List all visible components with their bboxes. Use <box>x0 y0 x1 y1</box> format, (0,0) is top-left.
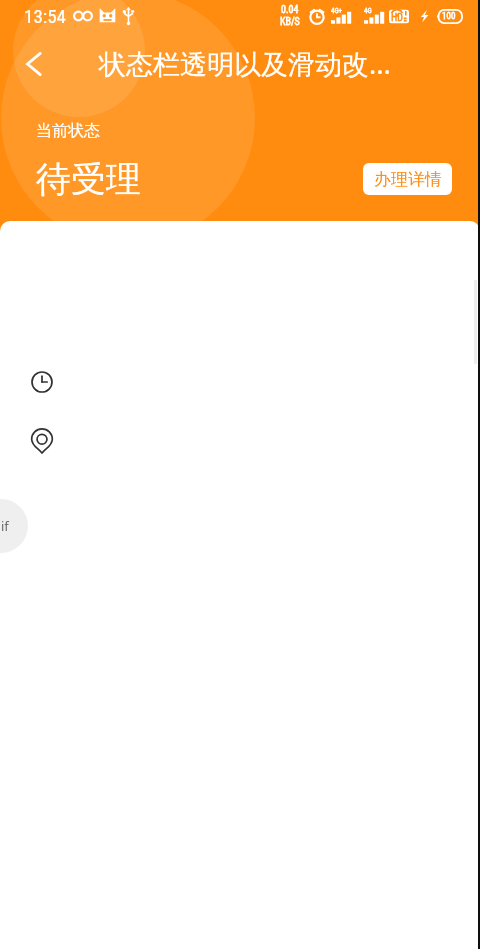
staticText: 4G+ <box>331 7 343 15</box>
staticText: 100 <box>442 11 456 22</box>
staticText: 0.04 <box>281 4 299 16</box>
staticText: KB/S <box>280 16 300 28</box>
staticText: 待受理 <box>36 157 141 201</box>
button[interactable]: Back <box>0 32 62 94</box>
button[interactable]: 办理详情 <box>363 163 452 195</box>
staticText: HD <box>391 12 403 24</box>
staticText: 当前状态 <box>36 121 100 141</box>
staticText: 4G <box>364 7 372 15</box>
staticText: 13:54 <box>24 5 66 27</box>
staticText: gif <box>0 517 9 535</box>
staticText: 办理详情 <box>374 169 442 190</box>
staticText: 状态栏透明以及滑动改... <box>99 45 391 82</box>
